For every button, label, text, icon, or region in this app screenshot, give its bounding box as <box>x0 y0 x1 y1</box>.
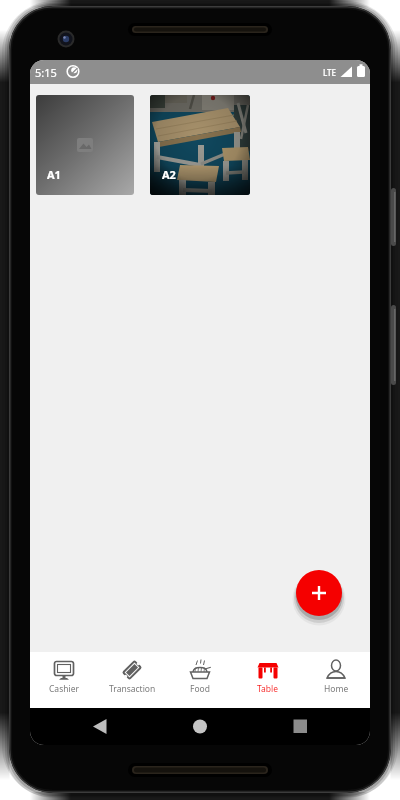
button[interactable] <box>296 570 342 616</box>
staticText: A1 <box>47 167 61 182</box>
button[interactable]: Cashier <box>30 652 98 708</box>
button[interactable]: Food <box>166 652 234 708</box>
staticText: A2 <box>162 167 176 182</box>
button[interactable]: Transaction <box>98 652 166 708</box>
button[interactable]: Table <box>234 652 302 708</box>
staticText: Food <box>190 683 210 695</box>
button[interactable]: A1 <box>36 95 134 195</box>
staticText: Transaction <box>109 683 156 695</box>
button[interactable]: A2 <box>150 95 250 195</box>
button[interactable]: Home <box>302 652 370 708</box>
staticText: 5:15 <box>35 65 57 80</box>
staticText: Cashier <box>49 683 79 695</box>
staticText: Home <box>324 683 349 695</box>
staticText: Table <box>257 683 279 695</box>
staticText: LTE <box>323 67 337 78</box>
